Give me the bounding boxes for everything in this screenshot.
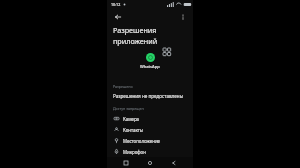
button[interactable]: Home — [145, 158, 155, 168]
staticText: Микрофон — [123, 149, 146, 155]
button[interactable]: Back — [169, 158, 179, 168]
staticText: Камера — [123, 116, 140, 122]
button[interactable]: Микрофон — [107, 146, 193, 157]
staticText: WhatsApp — [140, 64, 160, 69]
staticText: приложений — [113, 36, 158, 46]
button[interactable]: Back — [112, 11, 123, 22]
button[interactable]: Камера — [107, 113, 193, 124]
staticText: Разрешено — [113, 84, 133, 89]
staticText: Доступ запрещен — [113, 106, 144, 111]
staticText: Разрешения не предоставлены — [113, 93, 184, 99]
staticText: Разрешения — [113, 25, 157, 35]
staticText: 10:12 — [111, 2, 121, 7]
button[interactable]: Контакты — [107, 124, 193, 135]
button[interactable]: Recent apps — [121, 158, 131, 168]
staticText: Контакты — [123, 127, 144, 133]
button[interactable]: More options — [177, 11, 188, 22]
button[interactable]: Местоположение — [107, 135, 193, 146]
staticText: Местоположение — [123, 138, 161, 144]
